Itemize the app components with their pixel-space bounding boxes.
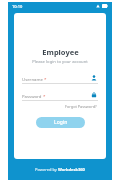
button[interactable]: Show password [90, 91, 98, 99]
button[interactable]: Login [36, 117, 85, 128]
button[interactable]: Forgot Password? [64, 103, 98, 110]
button[interactable]: Password [22, 91, 98, 101]
button[interactable]: Username [90, 74, 98, 82]
staticText: Powered by [35, 167, 58, 172]
staticText: Workdesk360 [58, 167, 85, 172]
staticText: * [42, 93, 46, 99]
staticText: Username [22, 76, 43, 82]
staticText: Please login to your account [32, 59, 88, 65]
staticText: * [43, 76, 47, 82]
staticText: Login [54, 119, 68, 126]
staticText: Forgot Password? [65, 104, 97, 109]
staticText: Password [22, 93, 42, 99]
staticText: 10:10 [12, 4, 23, 9]
button[interactable]: Username [22, 74, 98, 84]
staticText: Employee [42, 47, 79, 57]
